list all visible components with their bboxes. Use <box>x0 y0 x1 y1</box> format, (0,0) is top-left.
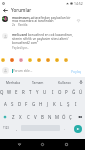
staticText: Merhaba <box>6 80 20 84</box>
button[interactable]: Ğ <box>70 87 77 97</box>
staticText: C <box>27 114 30 120</box>
staticText: G <box>32 101 36 107</box>
button[interactable]: Emoji <box>44 56 52 64</box>
staticText: Ş <box>67 101 70 107</box>
staticText: N <box>48 114 52 120</box>
staticText: Y <box>36 89 39 95</box>
staticText: O <box>58 89 62 95</box>
staticText: T <box>29 89 32 95</box>
staticText: I <box>75 101 77 107</box>
staticText: Ç <box>69 114 72 120</box>
button[interactable]: M <box>53 112 60 122</box>
staticText: ?123 <box>3 126 9 130</box>
button[interactable]: Z <box>10 112 17 122</box>
staticText: L <box>60 101 63 107</box>
button[interactable]: G <box>30 99 37 109</box>
staticText: R <box>22 89 25 95</box>
staticText: Q <box>0 89 4 95</box>
button[interactable]: Recents <box>62 140 71 149</box>
staticText: I <box>52 89 54 95</box>
button[interactable]: Emoji <box>53 56 61 64</box>
button[interactable]: Ç <box>67 112 74 122</box>
button[interactable]: Emoji <box>17 56 25 64</box>
staticText: F <box>25 101 28 107</box>
button[interactable]: Emoji <box>62 56 70 64</box>
staticText: X <box>19 114 22 120</box>
button[interactable]: N <box>46 112 53 122</box>
button[interactable]: P <box>63 87 70 97</box>
button[interactable]: J <box>44 99 51 109</box>
button[interactable]: T <box>27 87 34 97</box>
button[interactable]: L <box>58 99 65 109</box>
button[interactable]: X <box>17 112 24 122</box>
button[interactable]: U <box>41 87 48 97</box>
button[interactable]: R <box>20 87 27 97</box>
button[interactable]: Ş <box>65 99 72 109</box>
button[interactable]: O <box>56 87 63 97</box>
button[interactable]: Send <box>71 122 84 135</box>
button[interactable]: , <box>12 123 20 133</box>
button[interactable]: I <box>49 87 56 97</box>
button[interactable]: S <box>9 99 16 109</box>
staticText: W <box>7 89 12 95</box>
staticText: , <box>16 126 17 131</box>
staticText: Yorum ekle... <box>13 69 33 73</box>
button[interactable]: F <box>23 99 30 109</box>
button[interactable]: B <box>39 112 46 122</box>
staticText: V <box>34 114 37 120</box>
button[interactable]: W <box>6 87 13 97</box>
staticText: H <box>39 101 43 107</box>
staticText: P <box>65 89 68 95</box>
button[interactable]: D <box>16 99 23 109</box>
button[interactable]: Y <box>34 87 41 97</box>
staticText: Kullanıcı <box>58 80 71 84</box>
staticText: Z <box>12 114 15 120</box>
staticText: U <box>43 89 47 95</box>
button[interactable]: Backspace <box>76 112 83 122</box>
button[interactable]: E <box>13 87 20 97</box>
button[interactable]: Emoji <box>26 56 34 64</box>
button[interactable]: H <box>37 99 44 109</box>
button[interactable]: Paylaş <box>70 68 83 74</box>
button[interactable]: Tamam <box>25 77 51 87</box>
button[interactable]: Ü <box>77 87 84 97</box>
staticText: D <box>18 101 22 107</box>
button[interactable]: V <box>32 112 39 122</box>
button[interactable]: C <box>25 112 32 122</box>
staticText: J <box>47 101 49 107</box>
button[interactable]: Voice input <box>77 77 85 87</box>
button[interactable]: K <box>51 99 58 109</box>
button[interactable]: Back <box>1 6 9 14</box>
button[interactable]: meli.used bonusfeed en cok kazandiran, s… <box>0 33 85 53</box>
staticText: B <box>41 114 44 120</box>
button[interactable]: Like <box>76 18 81 23</box>
button[interactable]: Emoji <box>8 56 16 64</box>
staticText: M <box>55 114 59 120</box>
button[interactable]: Emoji <box>35 56 43 64</box>
button[interactable]: Shift <box>1 112 8 122</box>
staticText: 2s Yanitla <box>12 23 28 27</box>
button[interactable]: Kullanıcı <box>51 77 77 87</box>
button[interactable]: maximoves.ui tarafindan paylasilan bir m… <box>0 15 85 28</box>
button[interactable]: I <box>72 99 79 109</box>
staticText: Ü <box>79 89 83 95</box>
staticText: Ğ <box>72 89 76 95</box>
button[interactable]: Home <box>38 140 47 149</box>
staticText: Ö <box>62 114 66 120</box>
staticText: maximoves.ui tarafindan paylasilan bir m… <box>12 16 72 23</box>
staticText: Yorumlar <box>11 7 32 13</box>
staticText: 14:52 <box>74 1 83 6</box>
staticText: S <box>11 101 14 107</box>
button[interactable]: ?123 <box>0 123 11 133</box>
button[interactable]: Back <box>15 140 24 149</box>
staticText: Tamam <box>32 80 44 84</box>
button[interactable]: Merhaba <box>0 77 25 87</box>
button[interactable]: Ö <box>60 112 67 122</box>
button[interactable]: Q <box>0 87 5 97</box>
button[interactable]: A <box>2 99 9 109</box>
staticText: A <box>4 101 7 107</box>
button[interactable]: Emoji <box>0 56 7 64</box>
staticText: . <box>64 126 65 131</box>
